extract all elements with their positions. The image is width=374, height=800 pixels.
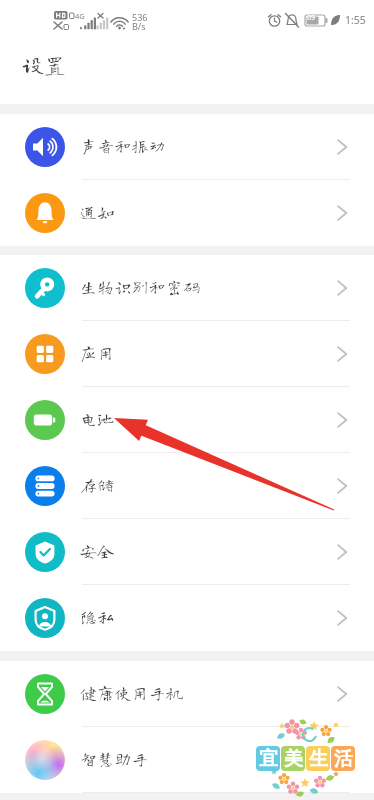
button[interactable]: 智慧助手 xyxy=(0,727,374,793)
staticText: 536 B/s xyxy=(132,11,148,33)
staticText: 4G xyxy=(75,11,85,21)
button[interactable]: 生物识别和密码 xyxy=(0,255,374,321)
staticText: 隐私 xyxy=(80,608,115,625)
staticText: 电池 xyxy=(80,410,115,427)
button[interactable]: 应用 xyxy=(0,321,374,387)
staticText: 美 xyxy=(284,747,303,771)
staticText: 声音和振动 xyxy=(80,137,166,154)
staticText: 应用 xyxy=(80,344,115,361)
staticText: 存储 xyxy=(80,476,115,493)
staticText: 智慧助手 xyxy=(80,750,149,767)
staticText: 生 xyxy=(309,747,328,771)
button[interactable]: 隐私 xyxy=(0,585,374,651)
button[interactable]: 存储 xyxy=(0,453,374,519)
staticText: 安全 xyxy=(80,542,115,559)
staticText: 通知 xyxy=(80,203,115,220)
staticText: 活 xyxy=(334,747,353,771)
staticText: 69 xyxy=(307,13,316,23)
button[interactable]: 健康使用手机 xyxy=(0,661,374,727)
button[interactable]: 通知 xyxy=(0,180,374,246)
staticText: 设置 xyxy=(22,54,67,76)
staticText: 宜 xyxy=(259,747,278,771)
staticText: 生物识别和密码 xyxy=(80,278,201,295)
button[interactable]: 声音和振动 xyxy=(0,114,374,180)
staticText: 健康使用手机 xyxy=(80,684,184,701)
button[interactable]: 安全 xyxy=(0,519,374,585)
staticText: 1:55 xyxy=(345,13,366,27)
button[interactable]: 电池 xyxy=(0,387,374,453)
